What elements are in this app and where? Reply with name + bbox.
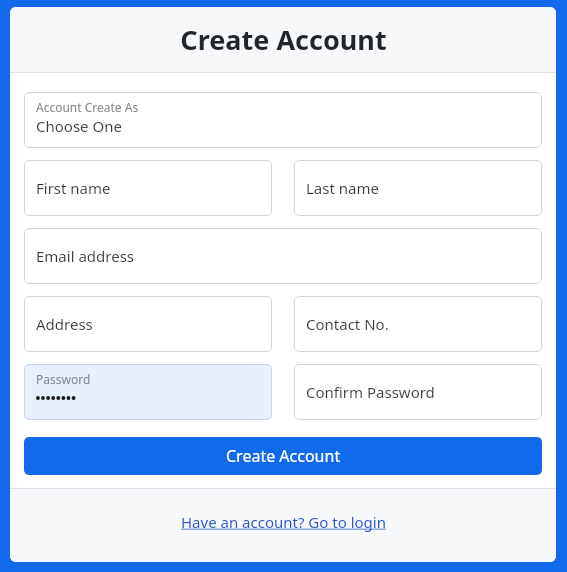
staticText: First name — [36, 178, 111, 198]
button[interactable]: Address — [24, 296, 272, 352]
button[interactable]: Email address — [24, 228, 542, 284]
button[interactable]: Password — [24, 364, 272, 420]
button[interactable]: Confirm Password — [294, 364, 542, 420]
button[interactable]: Account Create As — [24, 92, 542, 148]
button[interactable]: Contact No. — [294, 296, 542, 352]
staticText: Last name — [306, 178, 379, 198]
staticText: Address — [36, 314, 93, 334]
staticText: Confirm Password — [306, 382, 435, 402]
staticText: Password — [36, 371, 91, 387]
staticText: Choose One — [36, 116, 122, 136]
staticText: Create Account — [226, 445, 341, 467]
button[interactable]: Create Account — [24, 437, 542, 475]
button[interactable]: Last name — [294, 160, 542, 216]
staticText: Email address — [36, 246, 135, 266]
staticText: Account Create As — [36, 99, 139, 115]
button[interactable]: First name — [24, 160, 272, 216]
staticText: Have an account? Go to login — [181, 512, 386, 532]
staticText: Contact No. — [306, 314, 389, 334]
staticText: Create Account — [180, 21, 387, 58]
button[interactable]: Have an account? Go to login — [177, 510, 390, 534]
